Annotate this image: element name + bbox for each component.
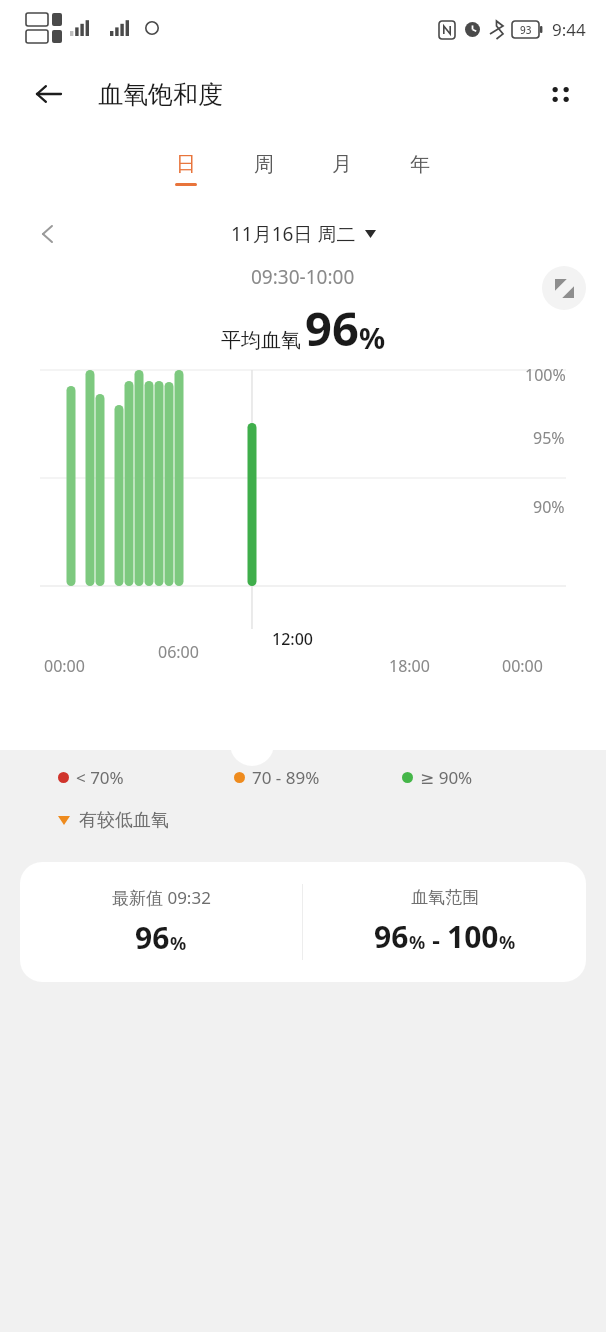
staticText: % <box>499 930 516 955</box>
staticText: 平均血氧 <box>221 328 301 353</box>
button[interactable]: Previous day <box>28 214 68 254</box>
button[interactable]: 年 <box>401 152 439 186</box>
staticText: % <box>409 930 426 955</box>
staticText: % <box>359 318 386 357</box>
staticText: 96 <box>305 296 359 360</box>
staticText: 09:30-10:00 <box>251 264 355 290</box>
button[interactable]: 有较低血氧 <box>58 809 606 832</box>
staticText: 18:00 <box>389 655 430 677</box>
staticText: 96 <box>135 917 170 958</box>
staticText: 9:44 <box>552 18 586 41</box>
staticText: 日 <box>167 152 205 177</box>
staticText: 70 - 89% <box>252 766 320 789</box>
staticText: 12:00 <box>272 628 313 650</box>
staticText: 月 <box>323 152 361 177</box>
button[interactable]: 日 <box>167 152 205 186</box>
staticText: 90% <box>533 496 565 518</box>
staticText: 血氧范围 <box>411 887 479 908</box>
staticText: 00:00 <box>44 655 85 677</box>
staticText: 96 <box>374 916 409 957</box>
button[interactable]: 月 <box>323 152 361 186</box>
button[interactable]: More options <box>536 70 584 118</box>
staticText: 有较低血氧 <box>79 809 169 832</box>
staticText: 93 <box>520 23 532 37</box>
staticText: 最新值 09:32 <box>112 886 211 909</box>
staticText: 100% <box>525 364 566 386</box>
button[interactable]: ≥ 90% <box>402 766 473 789</box>
staticText: ≥ 90% <box>420 766 473 789</box>
staticText: < 70% <box>76 766 124 789</box>
button[interactable]: 周 <box>245 152 283 186</box>
staticText: 95% <box>533 427 565 449</box>
button[interactable]: Full screen <box>542 266 586 310</box>
button[interactable]: Back <box>24 70 72 118</box>
button[interactable]: < 70% <box>58 766 124 789</box>
button[interactable]: 70 - 89% <box>234 766 320 789</box>
button[interactable]: 最新值 09:32 <box>20 862 586 982</box>
staticText: - <box>426 923 447 956</box>
staticText: 11月16日 周二 <box>231 221 356 247</box>
staticText: 周 <box>245 152 283 177</box>
button[interactable]: Time slider handle <box>230 722 274 766</box>
staticText: 血氧饱和度 <box>98 79 223 110</box>
button[interactable]: 11月16日 周二 <box>231 221 376 247</box>
staticText: 00:00 <box>502 655 543 677</box>
staticText: 年 <box>401 152 439 177</box>
staticText: 100 <box>447 916 499 957</box>
staticText: 06:00 <box>158 641 199 663</box>
staticText: % <box>170 931 187 956</box>
